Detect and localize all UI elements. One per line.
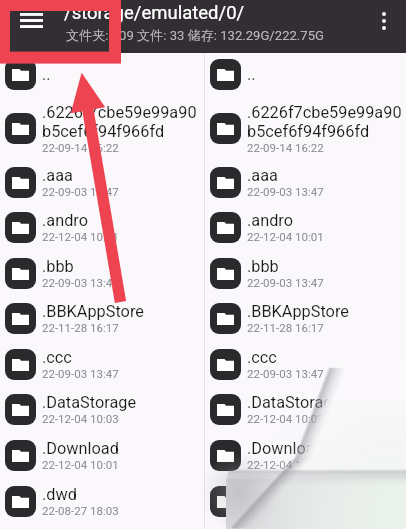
staticText: .6226f7cbe59e99a90	[247, 103, 402, 122]
staticText: .Download	[42, 439, 119, 458]
button[interactable]: .ccc	[0, 342, 204, 386]
staticText: .ccc	[247, 348, 277, 367]
button[interactable]: .andro	[205, 205, 406, 249]
staticText: 22-08-27 18:03	[42, 504, 119, 517]
staticText: .dwd	[247, 485, 282, 504]
staticText: ..	[247, 65, 256, 84]
button[interactable]: .aaa	[0, 160, 204, 204]
staticText: b5cef6f94f966fd	[247, 122, 370, 141]
staticText: 22-09-03 13:47	[247, 367, 324, 380]
button[interactable]: .bbb	[0, 251, 204, 295]
staticText: 22-12-04 10:03	[42, 412, 119, 425]
button[interactable]: .BBKAppStore	[0, 296, 204, 340]
staticText: 22-11-28 16:17	[247, 321, 324, 334]
staticText: .Download	[247, 439, 324, 458]
staticText: ..	[42, 65, 51, 84]
staticText: .BBKAppStore	[42, 302, 144, 321]
button[interactable]: .6226f7cbe59e99a90	[0, 97, 204, 159]
staticText: .dwd	[42, 485, 77, 504]
staticText: .aaa	[42, 166, 73, 185]
staticText: 22-08-27 18:03	[247, 504, 324, 517]
button[interactable]: ..	[205, 52, 406, 96]
staticText: .DataStorage	[42, 393, 137, 412]
staticText: 文件夹: 109 文件: 33 储存: 132.29G/222.75G	[66, 27, 324, 44]
button[interactable]: .bbb	[205, 251, 406, 295]
staticText: b5cef6f94f966fd	[42, 122, 165, 141]
staticText: 22-09-03 13:47	[42, 276, 119, 289]
button[interactable]: .ccc	[205, 342, 406, 386]
staticText: 22-12-04 10:01	[247, 230, 324, 243]
staticText: 22-09-14 16:22	[42, 141, 119, 154]
button[interactable]: .BBKAppStore	[205, 296, 406, 340]
button[interactable]: ..	[0, 52, 204, 96]
staticText: 22-12-04 10:01	[42, 230, 119, 243]
staticText: 22-12-04 10:01	[247, 458, 324, 471]
button[interactable]: .DataStorage	[205, 387, 406, 431]
button[interactable]: .aaa	[205, 160, 406, 204]
staticText: .bbb	[247, 257, 279, 276]
staticText: .ccc	[42, 348, 72, 367]
staticText: 22-12-04 10:01	[42, 458, 119, 471]
staticText: .aaa	[247, 166, 278, 185]
button[interactable]: .DataStorage	[0, 387, 204, 431]
staticText: .BBKAppStore	[247, 302, 349, 321]
staticText: .andro	[247, 211, 294, 230]
button[interactable]: .dwd	[0, 479, 204, 523]
staticText: 22-09-03 13:47	[42, 185, 119, 198]
staticText: 22-11-28 16:17	[42, 321, 119, 334]
staticText: 22-09-03 13:47	[247, 276, 324, 289]
staticText: /storage/emulated/0/	[64, 2, 245, 24]
staticText: .DataStorage	[247, 393, 342, 412]
staticText: 22-09-14 16:22	[247, 141, 324, 154]
staticText: 22-12-04 10:03	[247, 412, 324, 425]
staticText: .bbb	[42, 257, 74, 276]
staticText: 22-09-03 13:47	[42, 367, 119, 380]
button[interactable]: .Download	[205, 433, 406, 477]
button[interactable]: Menu	[0, 0, 62, 41]
staticText: .6226f7cbe59e99a90	[42, 103, 197, 122]
staticText: .andro	[42, 211, 89, 230]
button[interactable]: More options	[362, 0, 406, 41]
button[interactable]: .dwd	[205, 479, 406, 523]
button[interactable]: .Download	[0, 433, 204, 477]
button[interactable]: .6226f7cbe59e99a90	[205, 97, 406, 159]
button[interactable]: .andro	[0, 205, 204, 249]
staticText: 22-09-03 13:47	[247, 185, 324, 198]
